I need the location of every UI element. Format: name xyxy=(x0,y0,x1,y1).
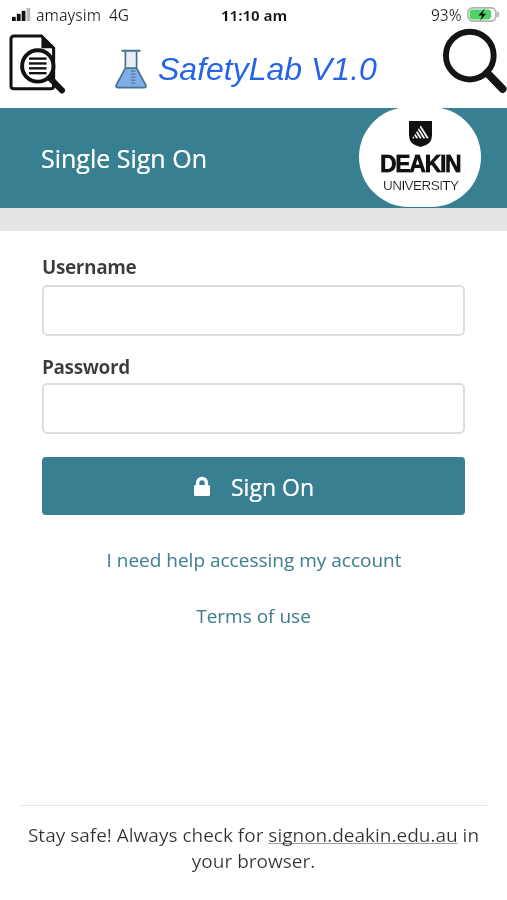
button[interactable]: Documents xyxy=(11,36,63,91)
button[interactable]: Search xyxy=(445,32,507,94)
staticText: amaysim xyxy=(36,4,101,25)
staticText: Password xyxy=(42,354,130,380)
staticText: UNIVERSITY xyxy=(383,178,459,193)
button[interactable]: I need help accessing my account xyxy=(96,539,412,581)
button[interactable]: Sign On xyxy=(42,457,465,515)
button[interactable] xyxy=(42,285,465,336)
button[interactable]: Terms of use xyxy=(186,595,321,637)
staticText: 11:10 am xyxy=(221,5,288,25)
staticText: Username xyxy=(42,254,137,280)
staticText: 4G xyxy=(109,4,130,25)
staticText: SafetyLab V1.0 xyxy=(158,51,377,87)
staticText: 93% xyxy=(431,4,462,25)
staticText: Single Sign On xyxy=(41,141,207,175)
button[interactable] xyxy=(42,383,465,434)
staticText: Stay safe! Always check for signon.deaki… xyxy=(24,822,483,874)
staticText: Sign On xyxy=(231,471,314,502)
staticText: DEAKIN xyxy=(380,151,461,177)
